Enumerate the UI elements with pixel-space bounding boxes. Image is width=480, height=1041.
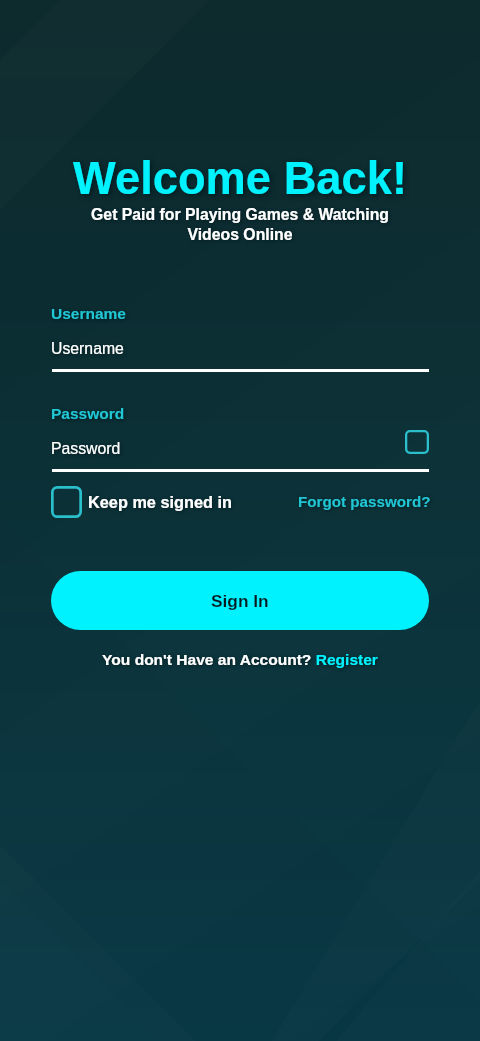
staticText: Password bbox=[51, 405, 125, 422]
button[interactable]: Show password bbox=[405, 430, 429, 454]
button[interactable]: You don't Have an Account? Register bbox=[0, 651, 480, 668]
staticText: Username bbox=[51, 340, 124, 358]
staticText: Get Paid for Playing Games & Watching Vi… bbox=[75, 206, 405, 243]
staticText: Sign In bbox=[211, 591, 269, 610]
button[interactable]: Sign In bbox=[51, 571, 429, 630]
staticText: Welcome Back! bbox=[0, 153, 480, 204]
button[interactable]: Keep me signed in bbox=[88, 493, 232, 511]
button[interactable]: Forgot password? bbox=[298, 493, 431, 510]
staticText: Username bbox=[51, 305, 126, 322]
button[interactable]: Keep me signed in bbox=[51, 486, 82, 518]
staticText: Password bbox=[51, 440, 121, 458]
